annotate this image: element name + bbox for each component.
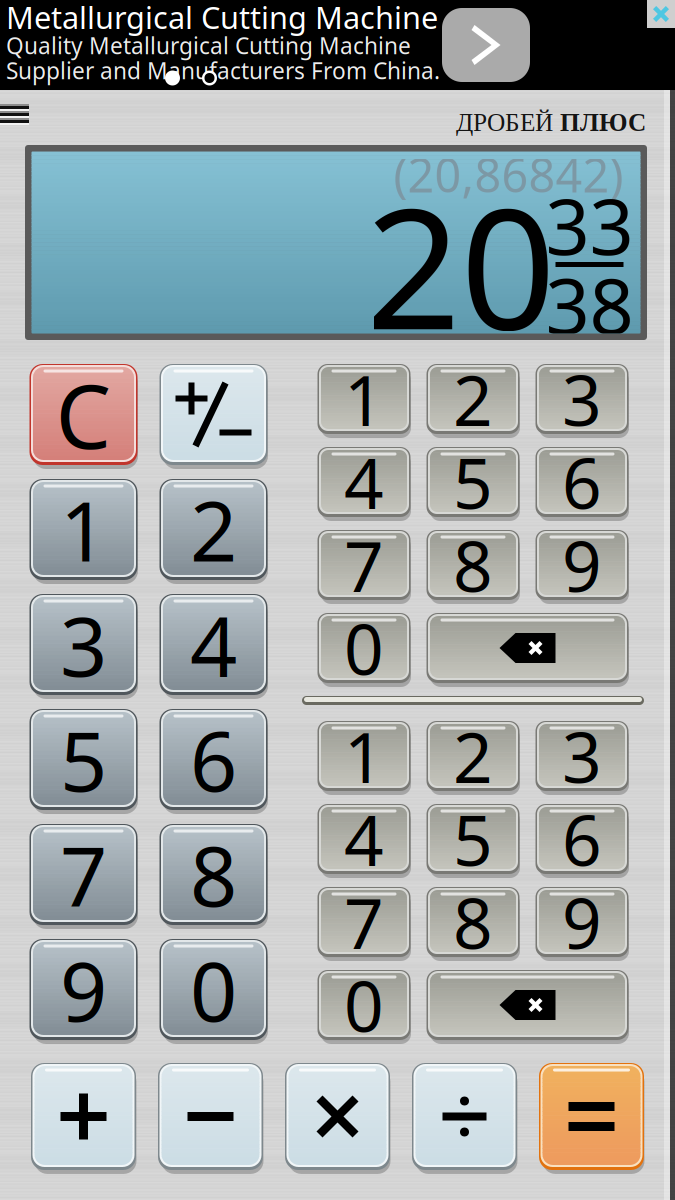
- staticText: (20,86842): [393, 143, 623, 205]
- button[interactable]: 9: [535, 887, 628, 957]
- staticText: 7: [344, 519, 384, 611]
- button[interactable]: Backspace: [426, 613, 628, 683]
- staticText: 6: [190, 705, 237, 814]
- button[interactable]: 1: [317, 721, 410, 791]
- staticText: 7: [60, 820, 107, 929]
- staticText: 8: [190, 820, 237, 929]
- staticText: 7: [344, 876, 384, 968]
- staticText: 8: [453, 519, 493, 611]
- button[interactable]: 0: [317, 613, 410, 683]
- button[interactable]: 4: [317, 447, 410, 517]
- staticText: 9: [562, 876, 602, 968]
- staticText: 0: [190, 935, 237, 1044]
- staticText: C: [55, 356, 111, 473]
- staticText: ПЛЮС: [560, 108, 646, 137]
- button[interactable]: 3: [535, 364, 628, 434]
- staticText: 6: [562, 793, 602, 885]
- button[interactable]: 8: [159, 824, 267, 925]
- button[interactable]: C: [29, 364, 137, 465]
- button[interactable]: 5: [426, 804, 519, 874]
- button[interactable]: 7: [317, 530, 410, 600]
- button[interactable]: 1: [317, 364, 410, 434]
- button[interactable]: 1: [29, 479, 137, 580]
- button[interactable]: 0: [317, 970, 410, 1040]
- staticText: 3: [562, 353, 602, 445]
- staticText: 9: [60, 935, 107, 1044]
- staticText: 2: [453, 353, 493, 445]
- button[interactable]: 5: [29, 709, 137, 810]
- staticText: Metallurgical Cutting Machine: [6, 0, 438, 37]
- button[interactable]: Subtract: [158, 1063, 263, 1170]
- staticText: 1: [344, 710, 384, 802]
- button[interactable]: Multiply: [285, 1063, 390, 1170]
- button[interactable]: 6: [159, 709, 267, 810]
- button[interactable]: 7: [29, 824, 137, 925]
- button[interactable]: 2: [426, 364, 519, 434]
- button[interactable]: 9: [535, 530, 628, 600]
- button[interactable]: 9: [29, 939, 137, 1040]
- staticText: 5: [453, 793, 493, 885]
- button[interactable]: Plus minus: [159, 364, 267, 465]
- button[interactable]: 3: [535, 721, 628, 791]
- staticText: 3: [60, 590, 107, 699]
- button[interactable]: Divide: [412, 1063, 517, 1170]
- button[interactable]: 6: [535, 804, 628, 874]
- staticText: 38: [545, 253, 633, 356]
- staticText: 1: [344, 353, 384, 445]
- button[interactable]: 4: [159, 594, 267, 695]
- button[interactable]: 3: [29, 594, 137, 695]
- button[interactable]: Close ad: [647, 0, 675, 28]
- staticText: 1: [60, 475, 107, 584]
- staticText: ДРОБЕЙ: [456, 108, 553, 137]
- staticText: 5: [60, 705, 107, 814]
- button[interactable]: Open ad: [442, 8, 530, 82]
- button[interactable]: Add: [31, 1063, 136, 1170]
- button[interactable]: 8: [426, 530, 519, 600]
- staticText: 2: [453, 710, 493, 802]
- staticText: Quality Metallurgical Cutting Machine: [6, 30, 411, 60]
- staticText: 5: [453, 436, 493, 528]
- button[interactable]: 6: [535, 447, 628, 517]
- staticText: 2: [190, 475, 237, 584]
- staticText: 6: [562, 436, 602, 528]
- button[interactable]: 2: [159, 479, 267, 580]
- staticText: 33: [545, 173, 633, 276]
- staticText: 20: [365, 154, 555, 375]
- staticText: Supplier and Manufacturers From China.: [6, 55, 440, 85]
- button[interactable]: Backspace: [426, 970, 628, 1040]
- button[interactable]: Menu: [0, 90, 29, 145]
- button[interactable]: 8: [426, 887, 519, 957]
- button[interactable]: Equals: [539, 1063, 644, 1170]
- staticText: 9: [562, 519, 602, 611]
- button[interactable]: 7: [317, 887, 410, 957]
- staticText: 3: [562, 710, 602, 802]
- button[interactable]: 2: [426, 721, 519, 791]
- staticText: 4: [344, 793, 384, 885]
- staticText: 0: [344, 602, 384, 694]
- button[interactable]: 0: [159, 939, 267, 1040]
- staticText: 0: [344, 959, 384, 1051]
- button[interactable]: 5: [426, 447, 519, 517]
- staticText: 4: [344, 436, 384, 528]
- staticText: 8: [453, 876, 493, 968]
- staticText: 4: [190, 590, 237, 699]
- button[interactable]: 4: [317, 804, 410, 874]
